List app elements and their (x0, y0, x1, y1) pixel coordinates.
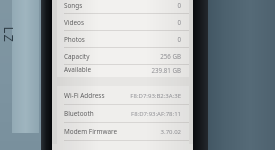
button[interactable]: Songs (57, 0, 189, 14)
staticText: Capacity (64, 52, 90, 61)
staticText: Wi-Fi Address (64, 91, 105, 100)
staticText: Modem Firmware (64, 127, 118, 136)
staticText: Photos (64, 35, 85, 44)
button[interactable]: Modem Firmware (57, 123, 189, 141)
staticText: 0 (177, 1, 181, 9)
staticText: Available (64, 65, 91, 74)
staticText: F8:D7:93:B2:3A:3E (130, 92, 181, 100)
staticText: F8:D7:93:AF:78:11 (131, 110, 181, 118)
button[interactable]: Available (57, 65, 189, 74)
staticText: 239.81 GB (151, 66, 181, 74)
staticText: Bluetooth (64, 109, 94, 118)
button[interactable]: Photos (57, 31, 189, 48)
staticText: LZM31550 (0, 26, 17, 53)
staticText: 0 (177, 35, 181, 43)
button[interactable]: Videos (57, 14, 189, 31)
staticText: Songs (64, 1, 83, 10)
staticText: 3.70.02 (160, 128, 181, 136)
staticText: 256 GB (160, 52, 181, 60)
button[interactable]: Capacity (57, 48, 189, 65)
button[interactable]: Bluetooth (57, 105, 189, 123)
button[interactable]: Wi-Fi Address (57, 87, 189, 105)
staticText: 0 (177, 18, 181, 26)
staticText: Videos (64, 18, 84, 27)
